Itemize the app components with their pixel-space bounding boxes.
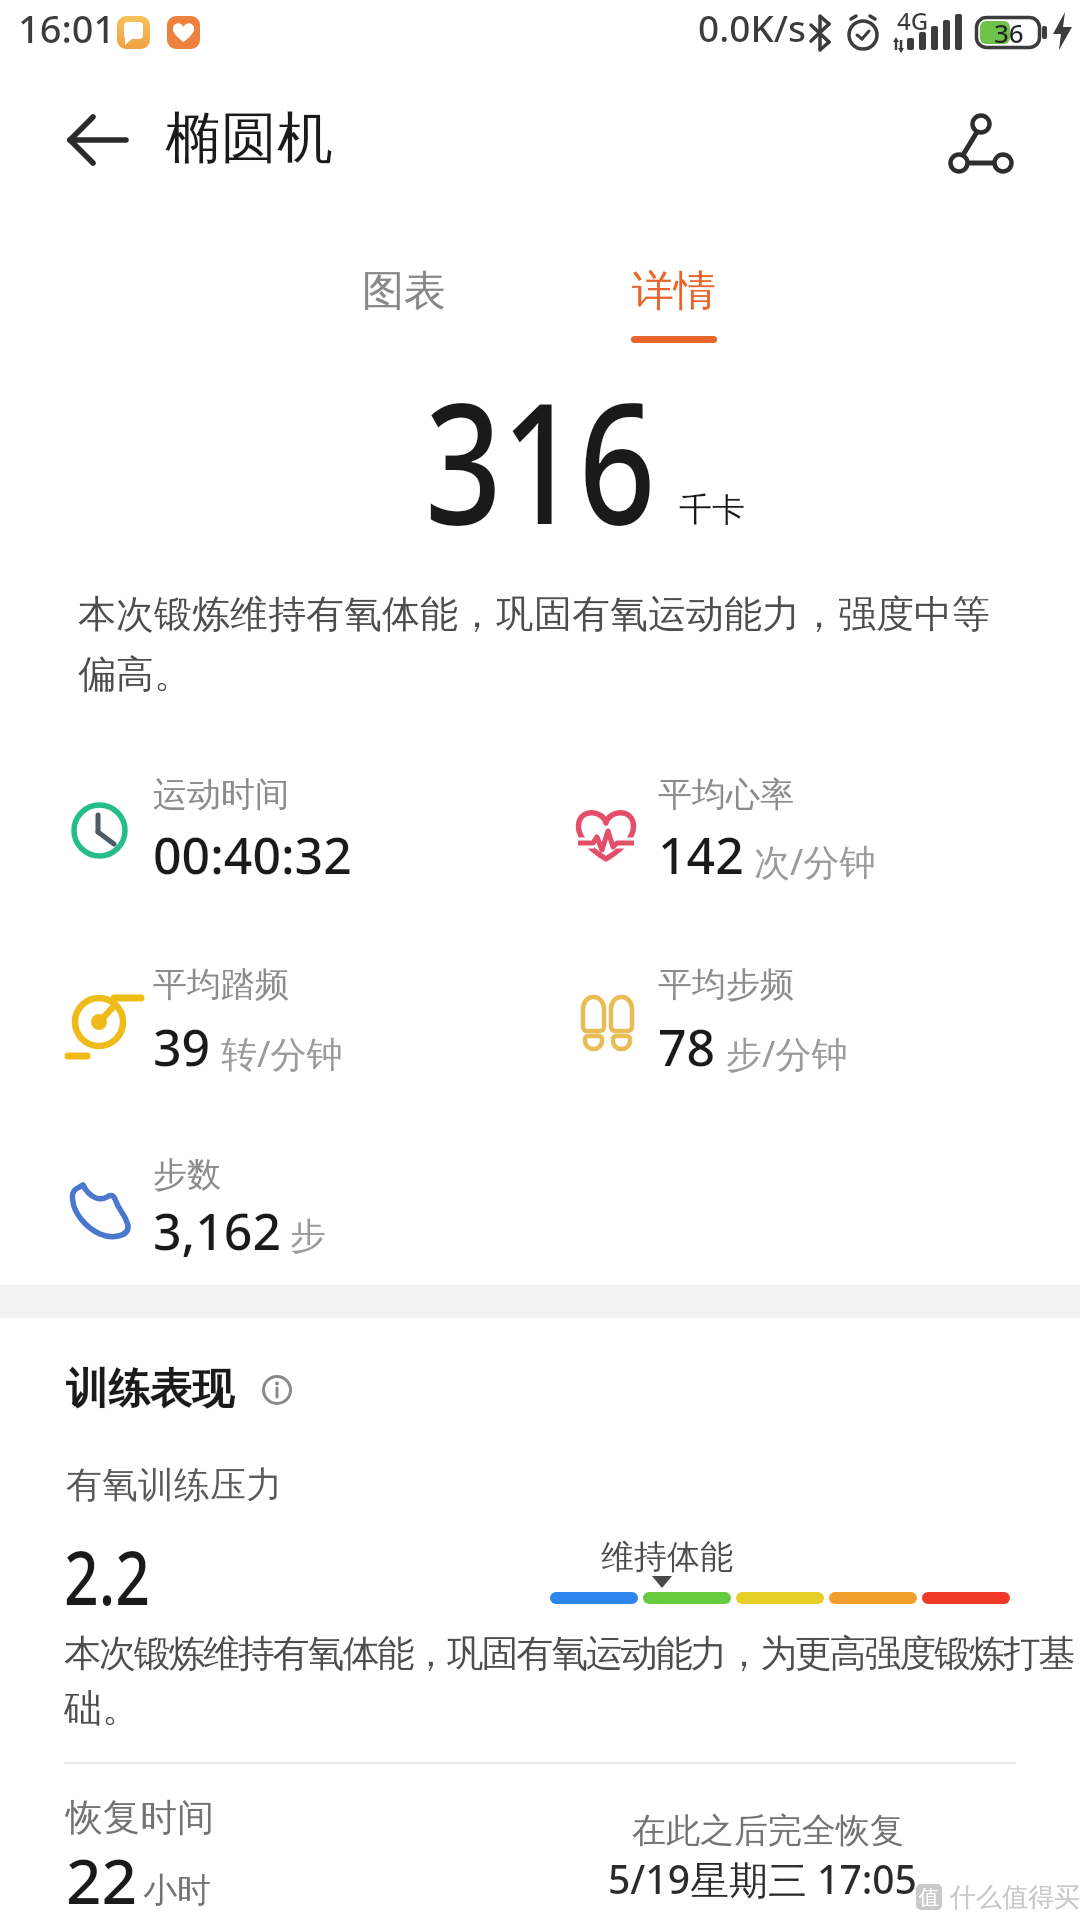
- staticText: 次/分钟: [754, 837, 876, 886]
- staticText: 平均步频: [658, 963, 794, 1006]
- staticText: 有氧训练压力: [66, 1462, 282, 1507]
- staticText: 小时: [143, 1869, 211, 1912]
- button[interactable]: [56, 112, 140, 168]
- staticText: 3,162: [153, 1197, 282, 1265]
- staticText: 142: [658, 821, 744, 889]
- staticText: 在此之后完全恢复: [632, 1809, 904, 1852]
- staticText: 转/分钟: [221, 1029, 343, 1078]
- button[interactable]: [938, 100, 1022, 184]
- staticText: 00:40:32: [153, 821, 352, 889]
- staticText: 39: [153, 1013, 211, 1081]
- staticText: 千卡: [679, 489, 745, 531]
- staticText: 316: [425, 344, 656, 573]
- staticText: 椭圆机: [165, 103, 333, 174]
- staticText: 恢复时间: [66, 1794, 214, 1841]
- staticText: 36: [994, 15, 1024, 50]
- button[interactable]: 图表: [314, 255, 494, 335]
- staticText: 详情: [632, 265, 716, 318]
- staticText: 运动时间: [153, 773, 289, 816]
- staticText: 偏高。: [78, 650, 192, 698]
- staticText: 22: [66, 1838, 137, 1920]
- button[interactable]: [262, 1375, 292, 1405]
- staticText: 维持体能: [601, 1536, 733, 1578]
- staticText: 训练表现: [66, 1363, 234, 1416]
- staticText: 4G: [897, 4, 929, 37]
- staticText: 平均心率: [658, 773, 794, 816]
- staticText: 78: [658, 1013, 716, 1081]
- staticText: 步/分钟: [726, 1029, 848, 1078]
- staticText: 本次锻炼维持有氧体能，巩固有氧运动能力，强度中等: [78, 590, 990, 638]
- staticText: 本次锻炼维持有氧体能，巩固有氧运动能力，为更高强度锻炼打基: [64, 1630, 1074, 1677]
- staticText: 5/19星期三 17:05: [608, 1852, 917, 1905]
- staticText: 步: [290, 1213, 326, 1258]
- staticText: 16:01: [18, 2, 116, 54]
- button[interactable]: 详情: [584, 255, 764, 350]
- staticText: 础。: [64, 1684, 140, 1732]
- staticText: 2.2: [64, 1526, 150, 1627]
- staticText: 0.0K/s: [698, 2, 807, 52]
- staticText: 值: [919, 1885, 939, 1910]
- staticText: 图表: [362, 265, 446, 318]
- staticText: 步数: [153, 1153, 221, 1196]
- staticText: 什么值得买: [950, 1881, 1080, 1914]
- staticText: 平均踏频: [153, 963, 289, 1006]
